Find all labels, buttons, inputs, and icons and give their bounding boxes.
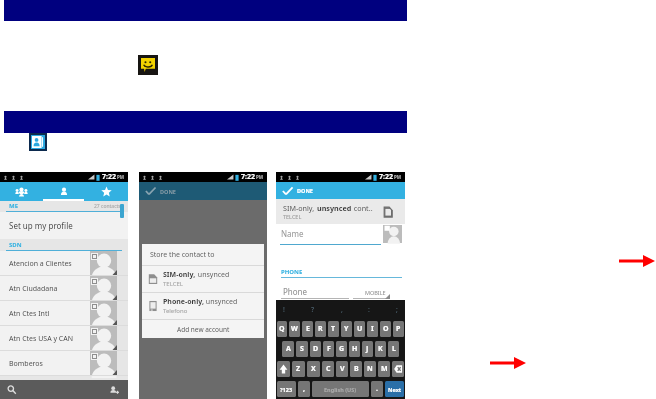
button[interactable]: Y [341, 321, 352, 337]
staticText: English (US) [324, 386, 357, 393]
staticText: ! [283, 305, 285, 315]
staticText: 7:22 [379, 172, 393, 182]
staticText: MOBILE [365, 289, 386, 296]
button[interactable]: Backspace [392, 361, 404, 377]
button[interactable]: Shift [277, 361, 290, 377]
button[interactable]: English (US) [312, 381, 369, 397]
button[interactable]: Contacts [42, 182, 85, 201]
staticText: DONE [297, 187, 313, 194]
staticText: SIM-only, [163, 270, 196, 280]
staticText: unsynced [317, 203, 352, 213]
staticText: F [327, 344, 331, 354]
staticText: A [286, 344, 291, 354]
staticText: X [311, 364, 316, 374]
button[interactable]: C [322, 361, 334, 377]
button[interactable]: SIM-only, [142, 266, 264, 292]
button[interactable]: T [328, 321, 339, 337]
staticText: R [318, 324, 323, 334]
button[interactable]: Messaging app [138, 55, 158, 75]
button[interactable]: D [310, 341, 321, 357]
button[interactable]: U [354, 321, 365, 337]
staticText: Telefono [163, 307, 188, 315]
button[interactable]: S [296, 341, 308, 357]
staticText: Next [388, 386, 402, 393]
staticText: C [326, 364, 331, 374]
button[interactable]: , [298, 381, 310, 397]
button[interactable]: Bomberos [0, 351, 128, 376]
button[interactable]: Add contact [107, 383, 121, 397]
staticText: unsynced [204, 297, 238, 307]
button[interactable]: Phone-only, [142, 293, 264, 319]
button[interactable]: F [323, 341, 334, 357]
button[interactable]: Z [292, 361, 305, 377]
staticText: Atn Ctes Intl [9, 309, 50, 319]
button[interactable]: E [302, 321, 313, 337]
staticText: Name [281, 228, 304, 239]
button[interactable]: L [388, 341, 399, 357]
button[interactable]: Atencion a Clientes [0, 251, 128, 276]
button[interactable]: Q [277, 321, 287, 337]
staticText: Q [279, 324, 285, 334]
staticText: ? [311, 305, 315, 315]
button[interactable]: . [371, 381, 383, 397]
button[interactable]: Add new account [142, 320, 264, 338]
button[interactable]: J [362, 341, 373, 357]
staticText: P [396, 324, 401, 334]
button[interactable]: G [336, 341, 347, 357]
staticText: ; [396, 305, 398, 315]
button[interactable]: H [349, 341, 360, 357]
staticText: ?123 [280, 386, 293, 393]
button[interactable]: Done [276, 182, 321, 199]
staticText: Atn Ciudadana [9, 284, 58, 294]
staticText: . [376, 384, 378, 394]
button[interactable]: Search [5, 383, 19, 397]
staticText: , [341, 305, 343, 315]
button[interactable]: M [378, 361, 390, 377]
button[interactable]: ?123 [277, 381, 296, 397]
button[interactable]: X [307, 361, 320, 377]
button[interactable]: Favorites [85, 182, 128, 201]
button[interactable]: People app [29, 133, 47, 151]
staticText: E [306, 324, 310, 334]
button[interactable]: B [350, 361, 362, 377]
other: Favorites [101, 186, 112, 197]
staticText: Store the contact to [150, 250, 215, 260]
staticText: 7:22 [241, 172, 255, 182]
button[interactable]: N [364, 361, 376, 377]
button[interactable]: A [282, 341, 294, 357]
button[interactable]: O [380, 321, 391, 337]
staticText: L [392, 344, 396, 354]
button[interactable]: Next [385, 381, 404, 397]
button[interactable]: Done [139, 182, 184, 200]
staticText: U [357, 324, 363, 334]
button[interactable]: R [315, 321, 326, 337]
button[interactable]: Atn Ctes USA y CAN [0, 326, 128, 351]
button[interactable]: K [375, 341, 386, 357]
staticText: ME [9, 202, 19, 210]
staticText: Phone [283, 286, 308, 297]
staticText: Add new account [177, 325, 230, 334]
staticText: PM [256, 174, 264, 180]
staticText: TELCEL [163, 280, 183, 288]
staticText: W [291, 324, 298, 334]
button[interactable]: Atn Ctes Intl [0, 301, 128, 326]
staticText: : [368, 305, 370, 315]
staticText: N [367, 364, 373, 374]
button[interactable]: I [367, 321, 378, 337]
button[interactable]: P [393, 321, 404, 337]
button[interactable]: SIM-only, [276, 199, 405, 224]
button[interactable]: Atn Ciudadana [0, 276, 128, 301]
button[interactable]: Set up my profile [0, 212, 128, 239]
button[interactable]: Groups [0, 182, 42, 201]
button[interactable]: W [289, 321, 300, 337]
staticText: Y [344, 324, 349, 334]
staticText: Z [296, 364, 301, 374]
staticText: S [300, 344, 304, 354]
staticText: DONE [160, 188, 176, 195]
staticText: B [354, 364, 359, 374]
button[interactable]: V [336, 361, 348, 377]
other: Add contact [109, 385, 119, 395]
staticText: G [339, 344, 345, 354]
staticText: Atencion a Clientes [9, 259, 72, 269]
button[interactable]: Add photo [383, 225, 402, 243]
